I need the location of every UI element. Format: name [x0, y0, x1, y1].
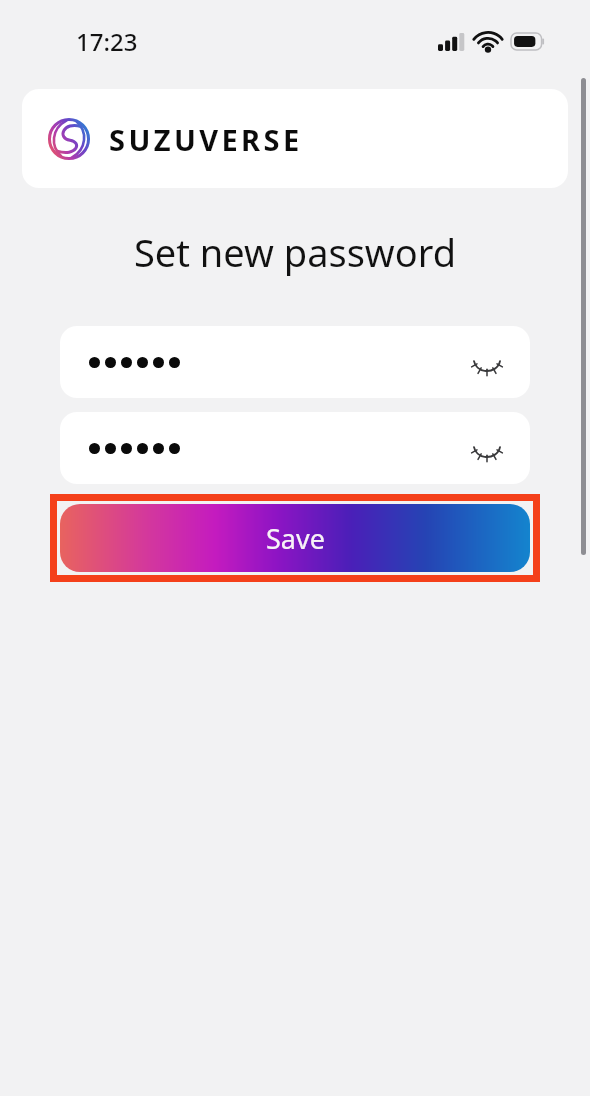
- staticText: Set new password: [0, 226, 590, 278]
- staticText: Save: [266, 520, 325, 557]
- staticText: SUZUVERSE: [109, 120, 303, 159]
- staticText: 17:23: [76, 25, 138, 58]
- button[interactable]: Show password: [60, 412, 530, 484]
- button[interactable]: Show password: [468, 429, 506, 467]
- button[interactable]: SUZUVERSE: [22, 89, 568, 188]
- button[interactable]: Save: [50, 494, 540, 582]
- button[interactable]: Show password: [60, 326, 530, 398]
- button[interactable]: Show password: [468, 343, 506, 381]
